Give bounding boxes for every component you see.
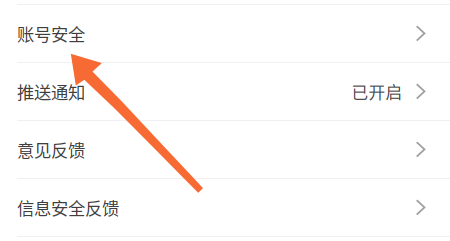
button[interactable]: 账号安全 bbox=[0, 5, 450, 62]
staticText: 意见反馈 bbox=[17, 137, 85, 162]
staticText: 信息安全反馈 bbox=[17, 195, 119, 220]
button[interactable]: 意见反馈 bbox=[0, 121, 450, 178]
staticText: 推送通知 bbox=[17, 79, 85, 104]
button[interactable]: 推送通知 bbox=[0, 63, 450, 120]
staticText: 账号安全 bbox=[17, 21, 85, 46]
button[interactable]: 信息安全反馈 bbox=[0, 179, 450, 236]
staticText: 已开启 bbox=[351, 79, 402, 103]
